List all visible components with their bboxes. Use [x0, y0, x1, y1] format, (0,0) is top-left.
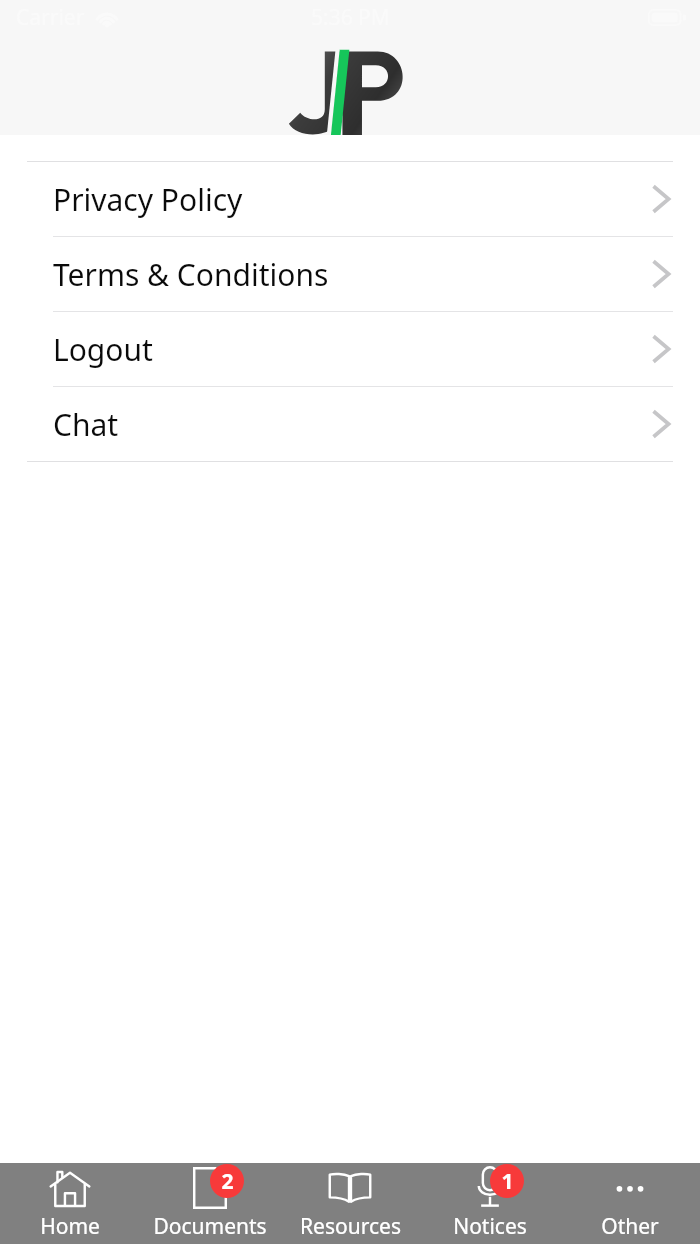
- button[interactable]: Chat: [0, 387, 700, 461]
- staticText: Terms & Conditions: [53, 254, 329, 295]
- button[interactable]: Home: [0, 1163, 140, 1244]
- other: Notices: [473, 1166, 507, 1210]
- staticText: Documents: [153, 1212, 267, 1241]
- other: Resources: [328, 1170, 372, 1206]
- other: Documents: [193, 1167, 227, 1209]
- staticText: Logout: [53, 329, 153, 370]
- staticText: Chat: [53, 404, 119, 445]
- button[interactable]: Logout: [0, 312, 700, 386]
- button[interactable]: Notices: [420, 1163, 560, 1244]
- staticText: Notices: [453, 1212, 527, 1241]
- staticText: Other: [601, 1212, 659, 1241]
- staticText: Resources: [300, 1212, 401, 1241]
- button[interactable]: Documents: [140, 1163, 280, 1244]
- button[interactable]: Privacy Policy: [0, 162, 700, 236]
- staticText: Privacy Policy: [53, 179, 243, 220]
- other: Other: [608, 1168, 652, 1208]
- staticText: 1: [501, 1167, 514, 1196]
- other: Home: [48, 1168, 92, 1208]
- staticText: Home: [40, 1212, 100, 1241]
- button[interactable]: Terms & Conditions: [0, 237, 700, 311]
- button[interactable]: Resources: [280, 1163, 420, 1244]
- staticText: 2: [221, 1167, 234, 1196]
- button[interactable]: Other: [560, 1163, 700, 1244]
